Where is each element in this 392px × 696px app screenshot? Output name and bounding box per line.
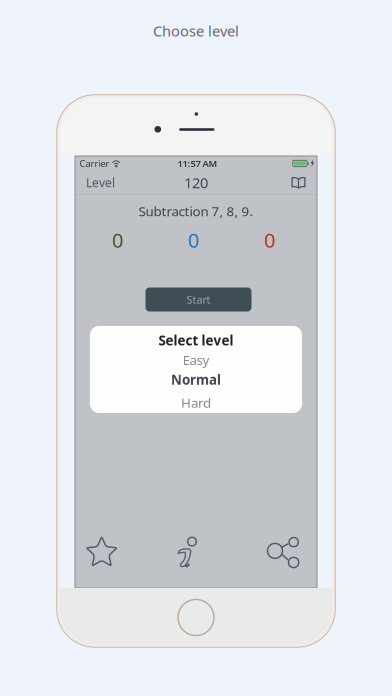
button[interactable]: Hard xyxy=(90,393,302,413)
button[interactable]: Easy xyxy=(90,350,302,370)
staticText: Carrier xyxy=(79,157,109,170)
staticText: Subtraction 7, 8, 9. xyxy=(138,202,253,220)
staticText: 120 xyxy=(184,173,208,192)
staticText: 0 xyxy=(264,227,275,253)
staticText: Start xyxy=(186,292,210,307)
staticText: Choose level xyxy=(153,21,239,40)
button[interactable]: Share xyxy=(261,529,305,573)
staticText: Easy xyxy=(182,351,209,369)
button[interactable]: Dictionary xyxy=(285,171,312,194)
button[interactable]: Level xyxy=(80,171,121,194)
button[interactable]: Normal xyxy=(90,370,302,390)
staticText: Hard xyxy=(181,394,211,411)
button[interactable]: Info xyxy=(166,531,210,575)
staticText: Select level xyxy=(158,331,233,349)
button[interactable]: Start xyxy=(145,287,251,311)
staticText: 0 xyxy=(112,227,123,253)
staticText: Normal xyxy=(171,371,221,388)
staticText: Level xyxy=(86,175,115,191)
staticText: 0 xyxy=(188,227,199,253)
staticText: 11:57 AM xyxy=(177,157,217,170)
button[interactable]: Favourites xyxy=(80,531,124,575)
